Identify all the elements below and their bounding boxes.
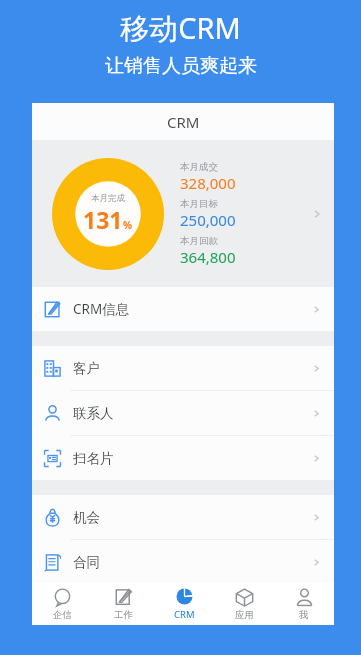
staticText: 客户 (73, 360, 100, 377)
staticText: 250,000 (180, 210, 236, 230)
button[interactable]: CRM信息 (32, 287, 334, 331)
staticText: 企信 (53, 609, 72, 621)
button[interactable]: 工作 (93, 583, 154, 625)
button[interactable]: 应用 (214, 583, 274, 625)
staticText: CRM (174, 608, 195, 621)
staticText: 让销售人员爽起来 (105, 54, 257, 78)
staticText: 本月成交 (180, 161, 218, 173)
button[interactable]: 我 (274, 583, 334, 625)
staticText: 328,000 (180, 173, 236, 193)
staticText: 本月完成 (91, 193, 125, 204)
button[interactable]: 企信 (32, 583, 93, 625)
staticText: 本月目标 (180, 198, 218, 210)
button[interactable]: 联系人 (32, 391, 334, 435)
button[interactable]: 合同 (32, 540, 334, 584)
staticText: 合同 (73, 554, 100, 571)
staticText: 应用 (235, 609, 254, 621)
button[interactable]: 本月完成 (32, 140, 334, 287)
staticText: 工作 (114, 609, 133, 621)
staticText: 本月回款 (180, 235, 218, 247)
staticText: 移动CRM (120, 8, 241, 48)
staticText: 我 (299, 609, 309, 621)
staticText: % (123, 218, 133, 232)
button[interactable]: 扫名片 (32, 436, 334, 480)
button[interactable]: CRM (154, 583, 214, 625)
staticText: CRM (167, 112, 200, 132)
staticText: 131 (83, 204, 123, 235)
staticText: 联系人 (73, 405, 114, 422)
button[interactable]: 客户 (32, 346, 334, 390)
staticText: 扫名片 (73, 450, 114, 467)
staticText: 机会 (73, 509, 100, 526)
staticText: 364,800 (180, 247, 236, 267)
button[interactable]: 机会 (32, 495, 334, 539)
staticText: CRM信息 (73, 300, 130, 318)
